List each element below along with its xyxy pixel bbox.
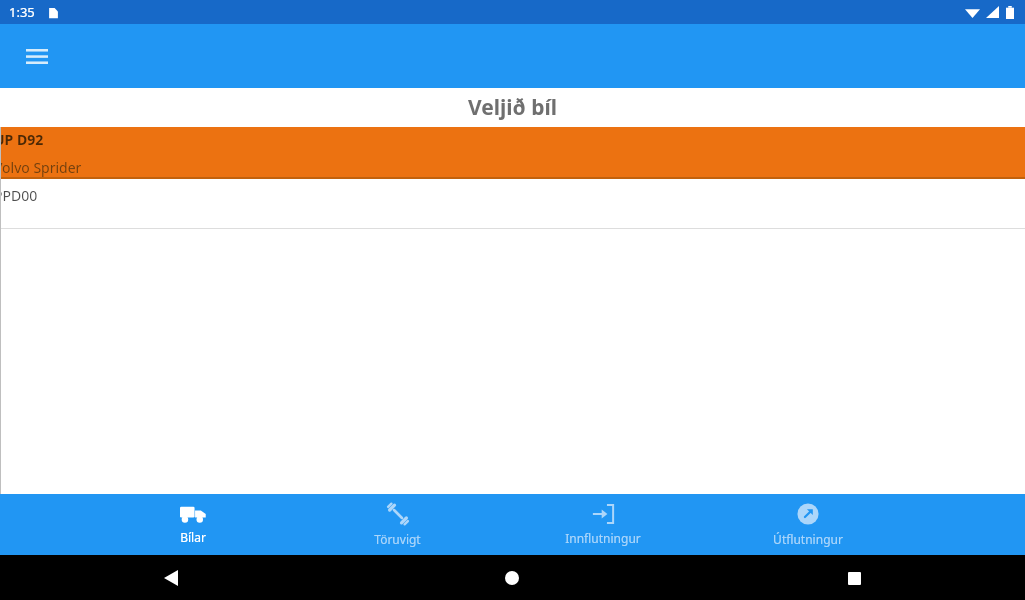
button[interactable]: Open navigation menu — [15, 34, 59, 78]
staticText: Töruvigt — [374, 531, 421, 547]
button[interactable]: Recent apps — [834, 558, 874, 598]
staticText: Veljið bíl — [468, 93, 557, 122]
button[interactable]: Bílar — [90, 494, 295, 555]
staticText: Volvo Sprider — [0, 158, 82, 177]
staticText: Bílar — [180, 529, 206, 545]
button[interactable]: UP D92 — [0, 127, 1025, 177]
button[interactable]: Back — [151, 558, 191, 598]
button[interactable]: Töruvigt — [295, 494, 500, 555]
staticText: Útflutningur — [773, 531, 843, 547]
staticText: 1:35 — [9, 3, 35, 21]
staticText: UP D92 — [0, 130, 44, 149]
staticText: Innflutningur — [565, 530, 641, 546]
staticText: PPD00 — [0, 186, 38, 205]
button[interactable]: PPD00 — [0, 179, 1025, 228]
button[interactable]: Útflutningur — [705, 494, 910, 555]
button[interactable]: Innflutningur — [500, 494, 705, 555]
button[interactable]: Home — [492, 558, 532, 598]
